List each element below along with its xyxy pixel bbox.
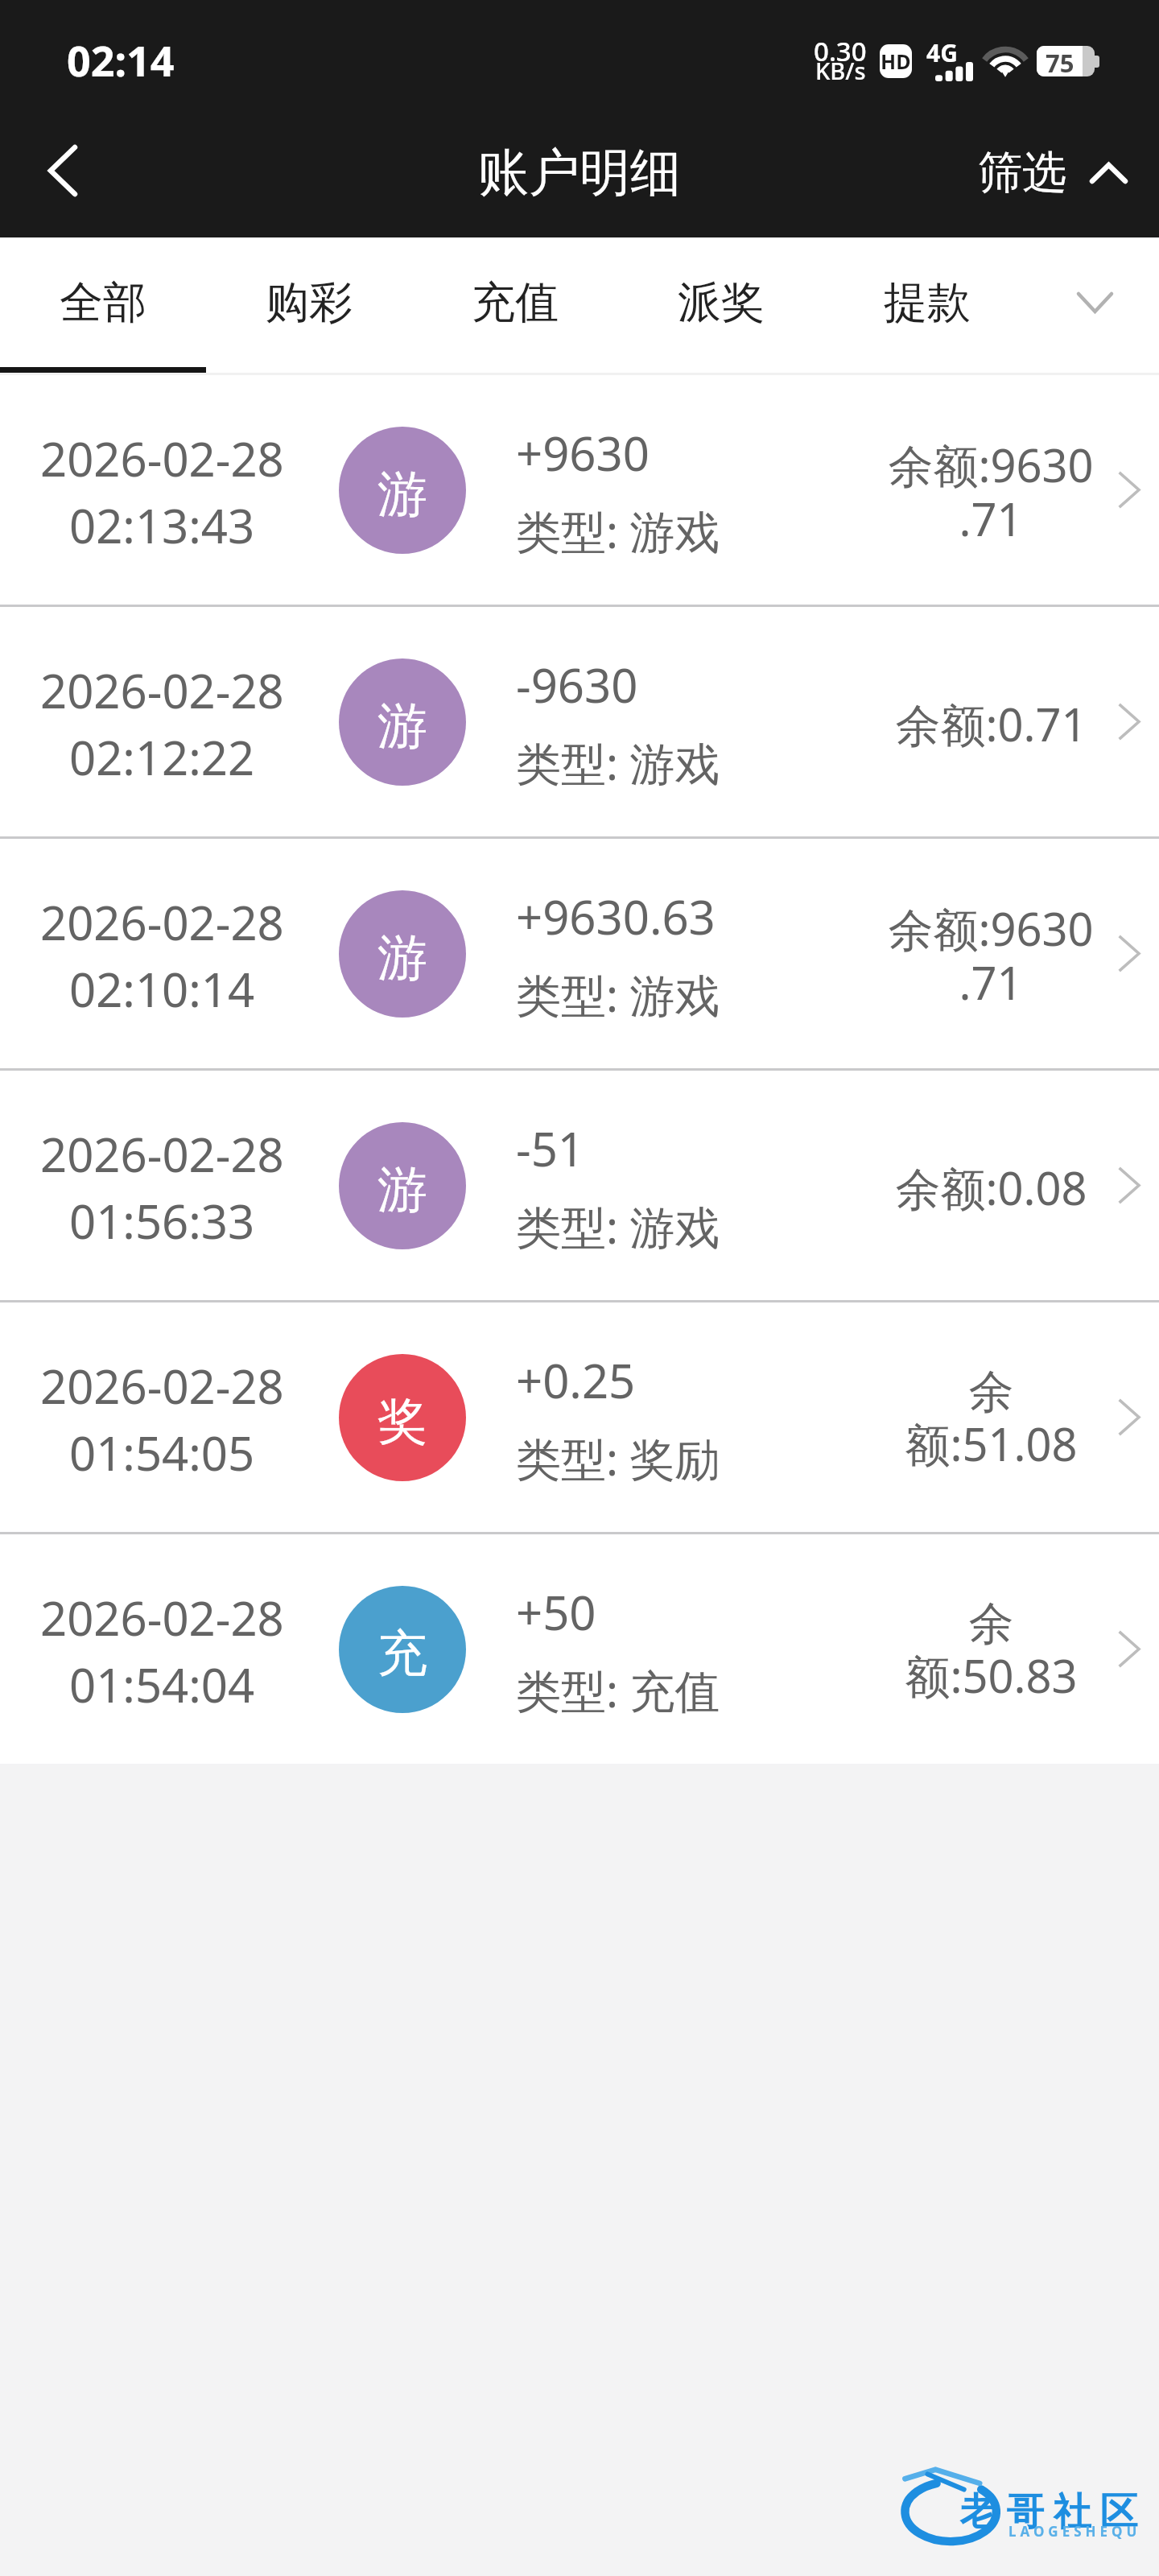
staticText: 75: [1046, 46, 1074, 76]
button[interactable]: 2026-02-28: [0, 607, 1159, 836]
staticText: 0.30: [814, 33, 867, 69]
staticText: -51: [516, 1117, 585, 1180]
staticText: 02:10:14: [69, 957, 255, 1021]
staticText: HD: [881, 47, 911, 75]
button[interactable]: 派奖: [618, 237, 824, 367]
button[interactable]: 筛选: [978, 145, 1125, 200]
staticText: 2026-02-28: [40, 427, 284, 490]
button[interactable]: More filters: [1030, 237, 1159, 367]
staticText: +0.25: [516, 1348, 636, 1412]
button[interactable]: 2026-02-28: [0, 1071, 1159, 1300]
staticText: 余 额:50.83: [905, 1596, 1078, 1707]
staticText: 余额:9630 .71: [888, 898, 1094, 1013]
staticText: 02:13:43: [69, 493, 255, 557]
button[interactable]: 2026-02-28: [0, 1302, 1159, 1532]
staticText: 类型: 游戏: [516, 732, 720, 793]
staticText: 全部: [60, 275, 146, 330]
staticText: 提款: [884, 275, 971, 330]
staticText: +50: [516, 1580, 596, 1644]
staticText: 筛选: [978, 145, 1066, 200]
button[interactable]: 提款: [824, 237, 1030, 367]
staticText: 4G: [926, 36, 958, 69]
staticText: 充值: [472, 275, 559, 330]
button[interactable]: Back: [18, 126, 108, 216]
staticText: 账户明细: [478, 141, 681, 204]
staticText: 02:14: [67, 31, 175, 89]
staticText: 02:12:22: [69, 725, 255, 789]
staticText: -9630: [516, 653, 638, 716]
button[interactable]: 全部: [0, 237, 206, 367]
staticText: 01:56:33: [69, 1189, 255, 1253]
staticText: 余 额:51.08: [905, 1364, 1078, 1475]
staticText: 类型: 奖励: [516, 1427, 720, 1488]
staticText: 购彩: [266, 275, 353, 330]
button[interactable]: 充值: [412, 237, 618, 367]
staticText: 奖: [377, 1390, 427, 1453]
staticText: LAOGESHEQU: [1008, 2522, 1141, 2541]
staticText: 老哥社区: [955, 2488, 1142, 2536]
staticText: 充: [377, 1622, 427, 1685]
staticText: 游: [377, 463, 427, 526]
staticText: 余额:0.71: [895, 693, 1087, 754]
button[interactable]: 2026-02-28: [0, 375, 1159, 605]
staticText: 2026-02-28: [40, 1122, 284, 1186]
staticText: 类型: 游戏: [516, 964, 720, 1025]
staticText: 类型: 游戏: [516, 1195, 720, 1257]
button[interactable]: 2026-02-28: [0, 839, 1159, 1068]
staticText: 01:54:05: [69, 1421, 255, 1484]
staticText: 2026-02-28: [40, 1354, 284, 1418]
button[interactable]: 2026-02-28: [0, 1534, 1159, 1764]
staticText: 游: [377, 927, 427, 989]
staticText: 2026-02-28: [40, 658, 284, 722]
staticText: 派奖: [678, 275, 765, 330]
staticText: 游: [377, 695, 427, 758]
staticText: 2026-02-28: [40, 890, 284, 954]
staticText: 游: [377, 1158, 427, 1221]
staticText: 余额:0.08: [895, 1157, 1087, 1218]
staticText: +9630.63: [516, 885, 716, 948]
staticText: 余额:9630 .71: [888, 434, 1094, 549]
staticText: +9630: [516, 421, 650, 485]
button[interactable]: 购彩: [206, 237, 412, 367]
staticText: 类型: 充值: [516, 1659, 720, 1720]
staticText: 01:54:04: [69, 1653, 255, 1716]
staticText: 类型: 游戏: [516, 500, 720, 561]
staticText: KB/s: [815, 55, 866, 86]
staticText: 2026-02-28: [40, 1586, 284, 1649]
